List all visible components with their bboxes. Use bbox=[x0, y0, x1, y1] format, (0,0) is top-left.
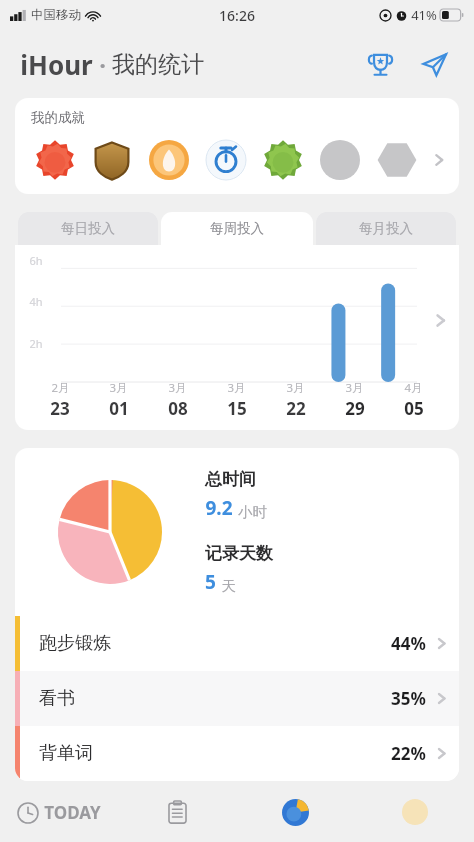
staticText: 3月 bbox=[109, 380, 128, 396]
button[interactable]: 跑步锻炼 bbox=[15, 616, 459, 671]
staticText: 每月投入 bbox=[359, 220, 413, 237]
staticText: · bbox=[99, 48, 106, 81]
staticText: 我的统计 bbox=[112, 50, 204, 79]
button[interactable]: 每日投入 bbox=[18, 212, 158, 245]
button[interactable]: 每周投入 bbox=[161, 212, 313, 245]
staticText: 15 bbox=[227, 397, 247, 420]
staticText: TODAY bbox=[44, 801, 101, 824]
staticText: 2h bbox=[29, 336, 43, 351]
staticText: 看书 bbox=[39, 687, 75, 710]
staticText: 我的成就 bbox=[31, 109, 85, 126]
staticText: 记录天数 bbox=[205, 543, 273, 564]
staticText: 01 bbox=[109, 397, 129, 420]
staticText: 中国移动 bbox=[31, 7, 81, 23]
button[interactable]: Achievement badge bbox=[197, 139, 254, 181]
staticText: 2月 bbox=[51, 380, 70, 396]
staticText: 29 bbox=[345, 397, 365, 420]
staticText: 08 bbox=[168, 397, 188, 420]
staticText: 9.2 bbox=[205, 495, 233, 521]
button[interactable]: Achievement badge bbox=[27, 139, 83, 181]
staticText: 背单词 bbox=[39, 742, 93, 765]
staticText: 总时间 bbox=[205, 469, 256, 490]
button[interactable]: 每月投入 bbox=[316, 212, 456, 245]
staticText: iHour bbox=[20, 47, 93, 82]
staticText: 44% bbox=[391, 632, 426, 655]
button[interactable]: Next period bbox=[425, 305, 455, 335]
staticText: 每日投入 bbox=[61, 220, 115, 237]
staticText: 5 bbox=[205, 569, 216, 595]
staticText: 每周投入 bbox=[210, 220, 264, 237]
staticText: 22 bbox=[286, 397, 306, 420]
button[interactable]: Achievements bbox=[360, 44, 400, 84]
staticText: 小时 bbox=[238, 503, 267, 521]
button[interactable]: Achievement badge bbox=[311, 139, 368, 181]
staticText: 41% bbox=[411, 6, 437, 24]
button[interactable]: Achievement badge bbox=[368, 139, 425, 181]
button[interactable]: 背单词 bbox=[15, 726, 459, 781]
button[interactable]: More achievements bbox=[425, 146, 453, 174]
staticText: 6h bbox=[29, 253, 43, 268]
staticText: 05 bbox=[404, 397, 424, 420]
button[interactable]: Today bbox=[0, 782, 118, 842]
button[interactable]: Achievement badge bbox=[83, 139, 140, 181]
staticText: 3月 bbox=[168, 380, 187, 396]
staticText: 22% bbox=[391, 742, 426, 765]
button[interactable]: Achievement badge bbox=[140, 139, 197, 181]
button[interactable]: Achievement badge bbox=[254, 139, 311, 181]
staticText: 3月 bbox=[227, 380, 246, 396]
staticText: 3月 bbox=[345, 380, 364, 396]
staticText: 天 bbox=[221, 577, 236, 595]
staticText: 23 bbox=[50, 397, 70, 420]
staticText: 跑步锻炼 bbox=[39, 632, 111, 655]
button[interactable]: Share bbox=[414, 44, 454, 84]
staticText: 4h bbox=[29, 294, 43, 309]
button[interactable]: 看书 bbox=[15, 671, 459, 726]
staticText: 3月 bbox=[286, 380, 305, 396]
staticText: 16:26 bbox=[219, 6, 255, 25]
staticText: 4月 bbox=[404, 380, 423, 396]
staticText: 35% bbox=[391, 687, 426, 710]
button[interactable]: Statistics bbox=[236, 782, 355, 842]
button[interactable]: Records bbox=[118, 782, 236, 842]
button[interactable]: Profile bbox=[355, 782, 474, 842]
